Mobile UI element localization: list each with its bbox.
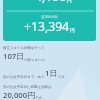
staticText: +13,394 — [24, 18, 70, 35]
staticText: 積立スタイル診断を行って — [3, 46, 45, 50]
staticText: +4,158 — [28, 0, 67, 5]
staticText: 次の注文予定日まで、あと — [3, 75, 45, 79]
button[interactable]: +4,158 — [3, 0, 96, 41]
staticText: です。 — [35, 96, 46, 100]
staticText: です。 — [58, 75, 69, 79]
staticText: が経ちました。 — [24, 58, 49, 62]
staticText: 次の注文予定日に必要な金額は — [3, 85, 52, 89]
staticText: 107日 — [3, 51, 24, 62]
staticText: 20,000円 — [3, 90, 35, 100]
staticText: 1日 — [45, 68, 58, 79]
staticText: 円 — [70, 28, 75, 34]
staticText: 円 — [67, 0, 72, 4]
staticText: 運用益総額 — [3, 15, 96, 19]
